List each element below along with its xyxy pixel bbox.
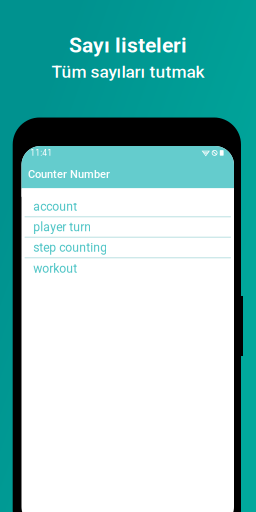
button[interactable]: player turn	[21, 217, 234, 238]
staticText: player turn	[33, 220, 91, 234]
staticText: step counting	[33, 240, 107, 255]
button[interactable]: workout	[21, 258, 234, 279]
staticText: Sayı listeleri	[69, 33, 187, 58]
staticText: 11:41	[30, 148, 52, 158]
staticText: Counter Number	[28, 168, 110, 181]
staticText: Tüm sayıları tutmak	[51, 62, 204, 82]
staticText: workout	[33, 261, 77, 276]
button[interactable]: account	[21, 197, 234, 217]
staticText: account	[33, 199, 77, 214]
button[interactable]: step counting	[21, 238, 234, 258]
